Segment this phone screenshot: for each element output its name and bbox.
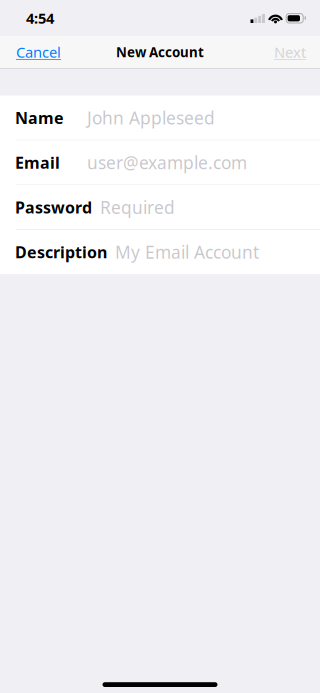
staticText: Required	[100, 196, 175, 219]
staticText: 4:54	[26, 8, 54, 28]
staticText: New Account	[116, 43, 204, 61]
staticText: Password	[15, 197, 92, 218]
staticText: Next	[274, 42, 306, 62]
button[interactable]: Password	[0, 185, 320, 229]
button[interactable]: Next	[260, 36, 320, 68]
button[interactable]: Cancel	[0, 36, 77, 68]
staticText: Name	[15, 107, 64, 128]
button[interactable]: Name	[0, 96, 320, 140]
staticText: Description	[15, 241, 107, 263]
staticText: My Email Account	[115, 241, 259, 264]
button[interactable]: Description	[0, 230, 320, 274]
staticText: John Appleseed	[87, 106, 215, 129]
staticText: Email	[15, 152, 60, 173]
staticText: user@example.com	[87, 151, 247, 174]
staticText: Cancel	[16, 42, 61, 62]
button[interactable]: Email	[0, 140, 320, 184]
